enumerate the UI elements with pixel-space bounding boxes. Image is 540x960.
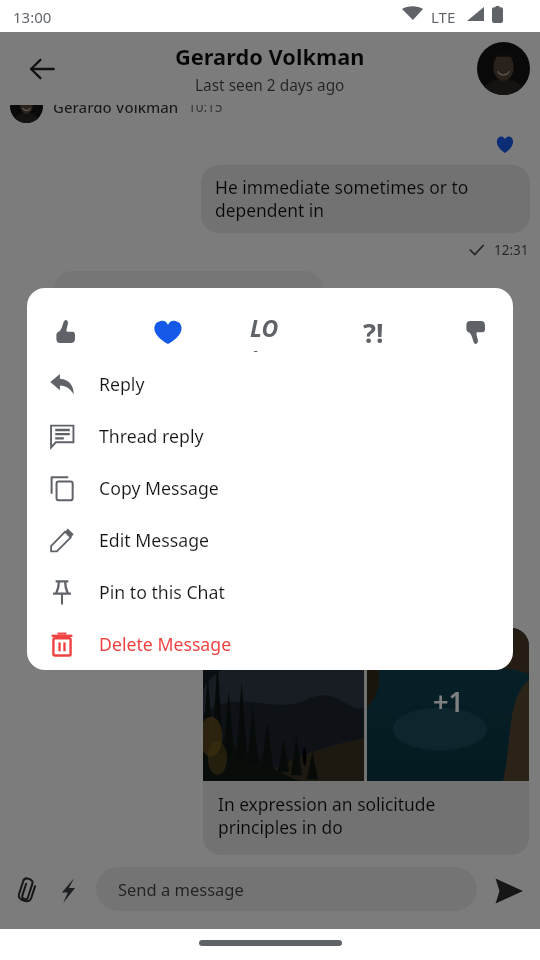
button[interactable]: Delete Message: [27, 618, 513, 670]
button[interactable]: Thumbs down: [460, 305, 490, 358]
button[interactable]: Copy Message: [27, 462, 513, 514]
other: Thumbs up: [56, 320, 75, 344]
staticText: Last seen 2 days ago: [195, 75, 345, 96]
button[interactable]: Profile: [477, 42, 530, 95]
staticText: Edit Message: [99, 528, 209, 552]
button[interactable]: Back: [26, 53, 58, 85]
other: Love: [154, 320, 182, 344]
staticText: Send a message: [118, 878, 244, 900]
button[interactable]: Thread reply: [27, 410, 513, 462]
staticText: 10:15: [188, 98, 223, 116]
button[interactable]: Love: [153, 305, 183, 358]
staticText: Gerardo Volkman: [53, 97, 179, 117]
other: Wow: [353, 312, 393, 352]
other: LOL: [250, 312, 290, 352]
button[interactable]: LOL: [255, 305, 285, 358]
staticText: Pin to this Chat: [99, 580, 225, 604]
staticText: 12:31: [494, 241, 529, 259]
staticText: He immediate sometimes or to dependent i…: [215, 175, 520, 222]
button[interactable]: Edit Message: [27, 514, 513, 566]
staticText: In expression an solicitude principles i…: [218, 792, 459, 839]
staticText: Copy Message: [99, 476, 219, 500]
button[interactable]: Quick actions: [61, 878, 75, 903]
staticText: LOL: [250, 312, 290, 352]
button[interactable]: Reply: [27, 358, 513, 410]
staticText: ?!: [363, 314, 384, 351]
staticText: Gerardo Volkman: [175, 42, 365, 72]
staticText: LTE: [431, 7, 456, 27]
staticText: Delete Message: [99, 632, 232, 656]
staticText: Reply: [99, 372, 145, 396]
button[interactable]: Thumbs up: [50, 305, 80, 358]
staticText: +1: [433, 683, 464, 720]
other: Thumbs down: [466, 320, 485, 344]
button[interactable]: Send: [495, 878, 523, 904]
button[interactable]: Pin to this Chat: [27, 566, 513, 618]
button[interactable]: Attach file: [17, 877, 38, 904]
staticText: 13:00: [13, 7, 52, 27]
staticText: Thread reply: [99, 424, 204, 448]
button[interactable]: Wow: [358, 305, 388, 358]
button[interactable]: Send a message: [96, 867, 477, 911]
